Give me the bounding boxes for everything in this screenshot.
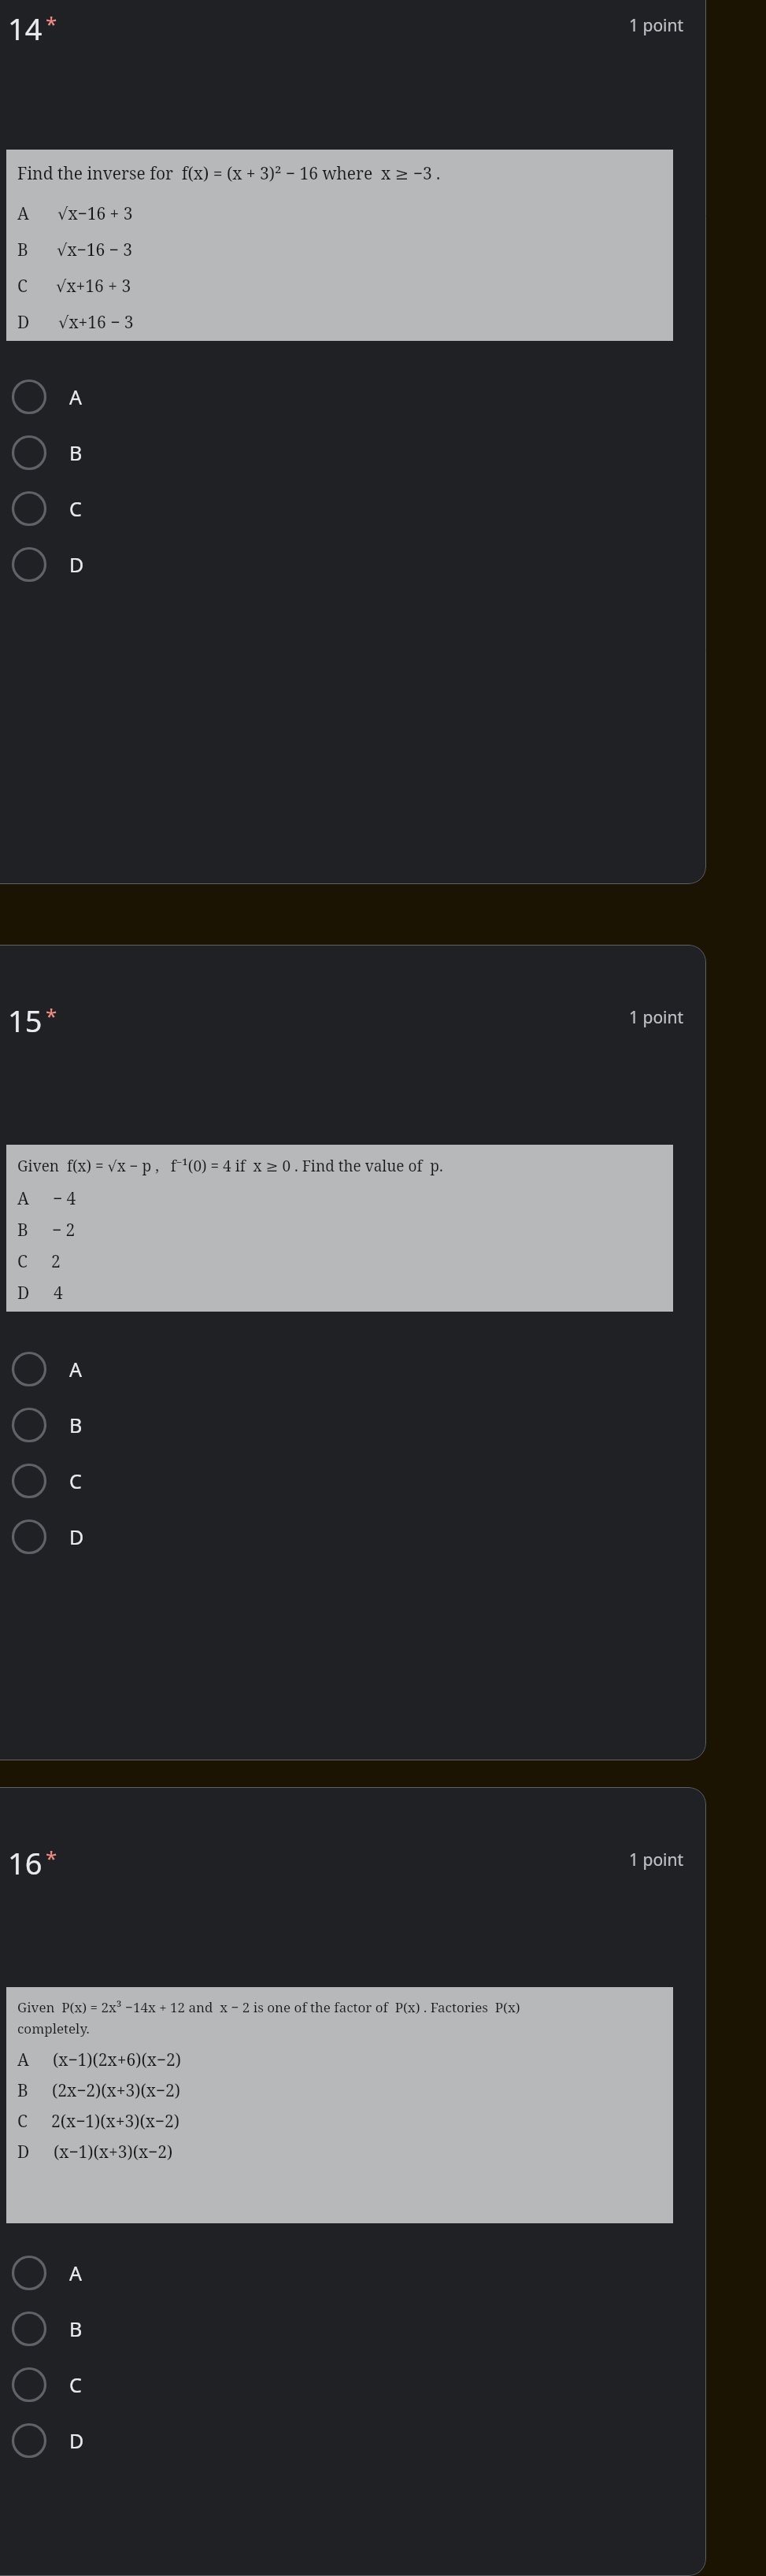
staticText: D [69, 551, 84, 578]
staticText: C [69, 2371, 82, 2398]
staticText: 14 [8, 8, 43, 49]
staticText: B [69, 1412, 83, 1438]
button[interactable]: D [0, 1519, 706, 1555]
staticText: completely. [17, 2019, 90, 2037]
staticText: B [69, 439, 83, 466]
staticText: * [46, 1844, 57, 1871]
button[interactable]: A [0, 2255, 706, 2291]
button[interactable]: D [0, 546, 706, 583]
staticText: A [69, 383, 82, 410]
staticText: √x−16 − 3 [57, 239, 132, 261]
staticText: B [69, 2315, 83, 2342]
staticText: D [17, 2141, 30, 2163]
staticText: D [69, 1523, 84, 1550]
staticText: A [17, 1187, 29, 1210]
staticText: D [17, 311, 30, 334]
staticText: Given f(x) = √x − p , f⁻¹(0) = 4 if x ≥ … [17, 1156, 443, 1176]
staticText: (x−1)(2x+6)(x−2) [53, 2049, 182, 2071]
staticText: C [69, 495, 82, 522]
staticText: √x−16 + 3 [57, 202, 133, 225]
staticText: (2x−2)(x+3)(x−2) [52, 2079, 181, 2102]
staticText: (x−1)(x+3)(x−2) [54, 2141, 173, 2163]
staticText: 4 [54, 1282, 63, 1305]
staticText: * [46, 9, 57, 37]
button[interactable]: A [0, 379, 706, 415]
staticText: 1 point [629, 1849, 684, 1871]
button[interactable]: A [0, 1351, 706, 1387]
staticText: B [17, 239, 28, 261]
staticText: 2 [51, 1250, 61, 1273]
staticText: C [17, 2110, 28, 2133]
staticText: √x+16 + 3 [56, 275, 131, 298]
staticText: − 2 [52, 1219, 76, 1242]
staticText: C [69, 1468, 82, 1494]
button[interactable]: B [0, 435, 706, 471]
staticText: A [69, 1356, 82, 1382]
staticText: Given P(x) = 2x³ −14x + 12 and x − 2 is … [17, 1998, 520, 2016]
staticText: C [17, 275, 28, 298]
button[interactable]: B [0, 1407, 706, 1443]
button[interactable]: B [0, 2311, 706, 2347]
button[interactable]: D [0, 2422, 706, 2459]
staticText: 1 point [629, 1006, 684, 1029]
staticText: B [17, 1219, 28, 1242]
staticText: D [69, 2427, 84, 2454]
staticText: 1 point [629, 14, 684, 37]
staticText: Find the inverse for f(x) = (x + 3)² − 1… [17, 162, 441, 185]
staticText: * [46, 1001, 57, 1029]
staticText: 16 [8, 1842, 43, 1883]
staticText: − 4 [53, 1187, 76, 1210]
staticText: 15 [8, 1000, 43, 1041]
staticText: √x+16 − 3 [58, 311, 134, 334]
button[interactable]: C [0, 490, 706, 527]
staticText: D [17, 1282, 30, 1305]
staticText: C [17, 1250, 28, 1273]
button[interactable]: C [0, 2367, 706, 2403]
staticText: A [69, 2260, 82, 2286]
button[interactable]: C [0, 1463, 706, 1499]
staticText: A [17, 2049, 29, 2071]
staticText: B [17, 2079, 28, 2102]
staticText: A [17, 202, 29, 225]
staticText: 2(x−1)(x+3)(x−2) [51, 2110, 180, 2133]
